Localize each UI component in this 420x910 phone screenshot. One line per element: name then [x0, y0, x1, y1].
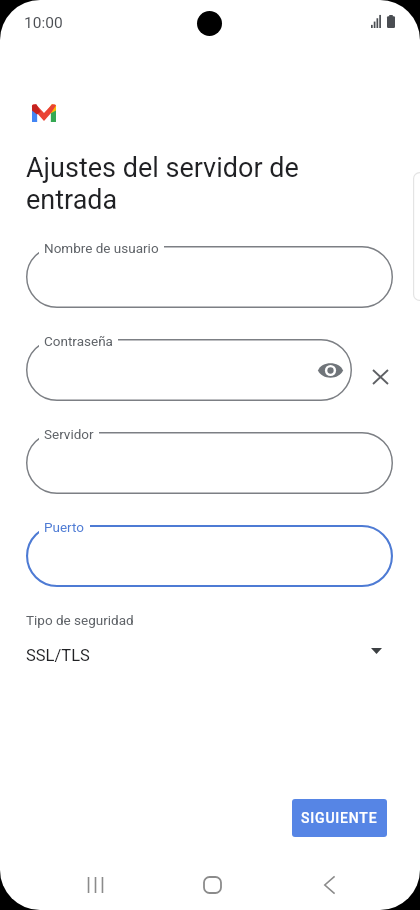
- staticText: Contraseña: [44, 333, 113, 349]
- button[interactable]: Aplicaciones recientes: [55, 860, 135, 910]
- staticText: Puerto: [44, 519, 85, 535]
- button[interactable]: SIGUIENTE: [292, 799, 387, 837]
- button[interactable]: Borrar contraseña: [360, 357, 400, 397]
- staticText: SIGUIENTE: [301, 810, 378, 826]
- staticText: Ajustes del servidor de entrada: [26, 152, 299, 216]
- staticText: SSL/TLS: [26, 646, 90, 665]
- staticText: Nombre de usuario: [44, 240, 159, 256]
- button[interactable]: Contraseña: [26, 339, 352, 401]
- button[interactable]: Mostrar contraseña: [313, 353, 347, 387]
- button[interactable]: Servidor: [26, 432, 393, 494]
- staticText: 10:00: [24, 14, 63, 32]
- staticText: Servidor: [44, 426, 94, 442]
- button[interactable]: Puerto: [26, 525, 393, 587]
- button[interactable]: Atrás: [289, 860, 369, 910]
- button[interactable]: Nombre de usuario: [26, 246, 393, 308]
- button[interactable]: Tipo de seguridad: [0, 606, 420, 668]
- button[interactable]: Inicio: [172, 860, 252, 910]
- staticText: Tipo de seguridad: [26, 612, 134, 628]
